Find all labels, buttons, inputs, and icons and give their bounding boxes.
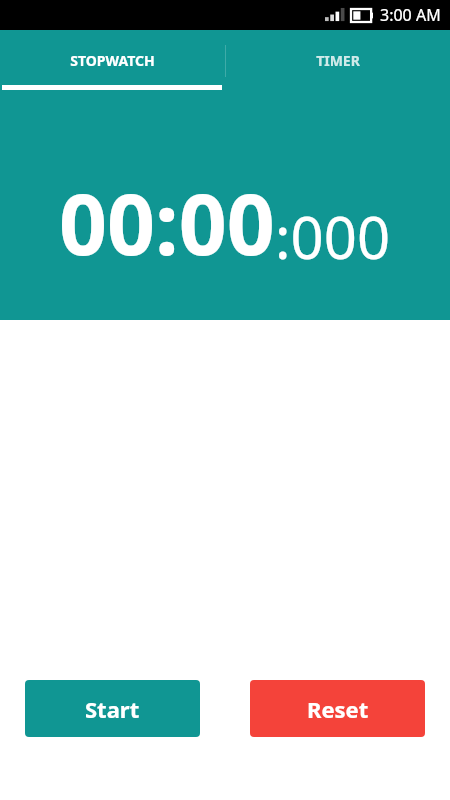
staticText: :000 <box>275 197 391 276</box>
staticText: Start <box>85 694 140 724</box>
staticText: TIMER <box>316 51 360 70</box>
staticText: STOPWATCH <box>70 51 155 70</box>
staticText: 3:00 AM <box>380 4 441 26</box>
button[interactable]: Start <box>25 680 200 737</box>
button[interactable]: STOPWATCH <box>0 30 225 90</box>
staticText: Reset <box>307 694 369 724</box>
button[interactable]: Reset <box>250 680 425 737</box>
button[interactable]: TIMER <box>225 30 450 90</box>
staticText: 00:00 <box>59 165 275 279</box>
